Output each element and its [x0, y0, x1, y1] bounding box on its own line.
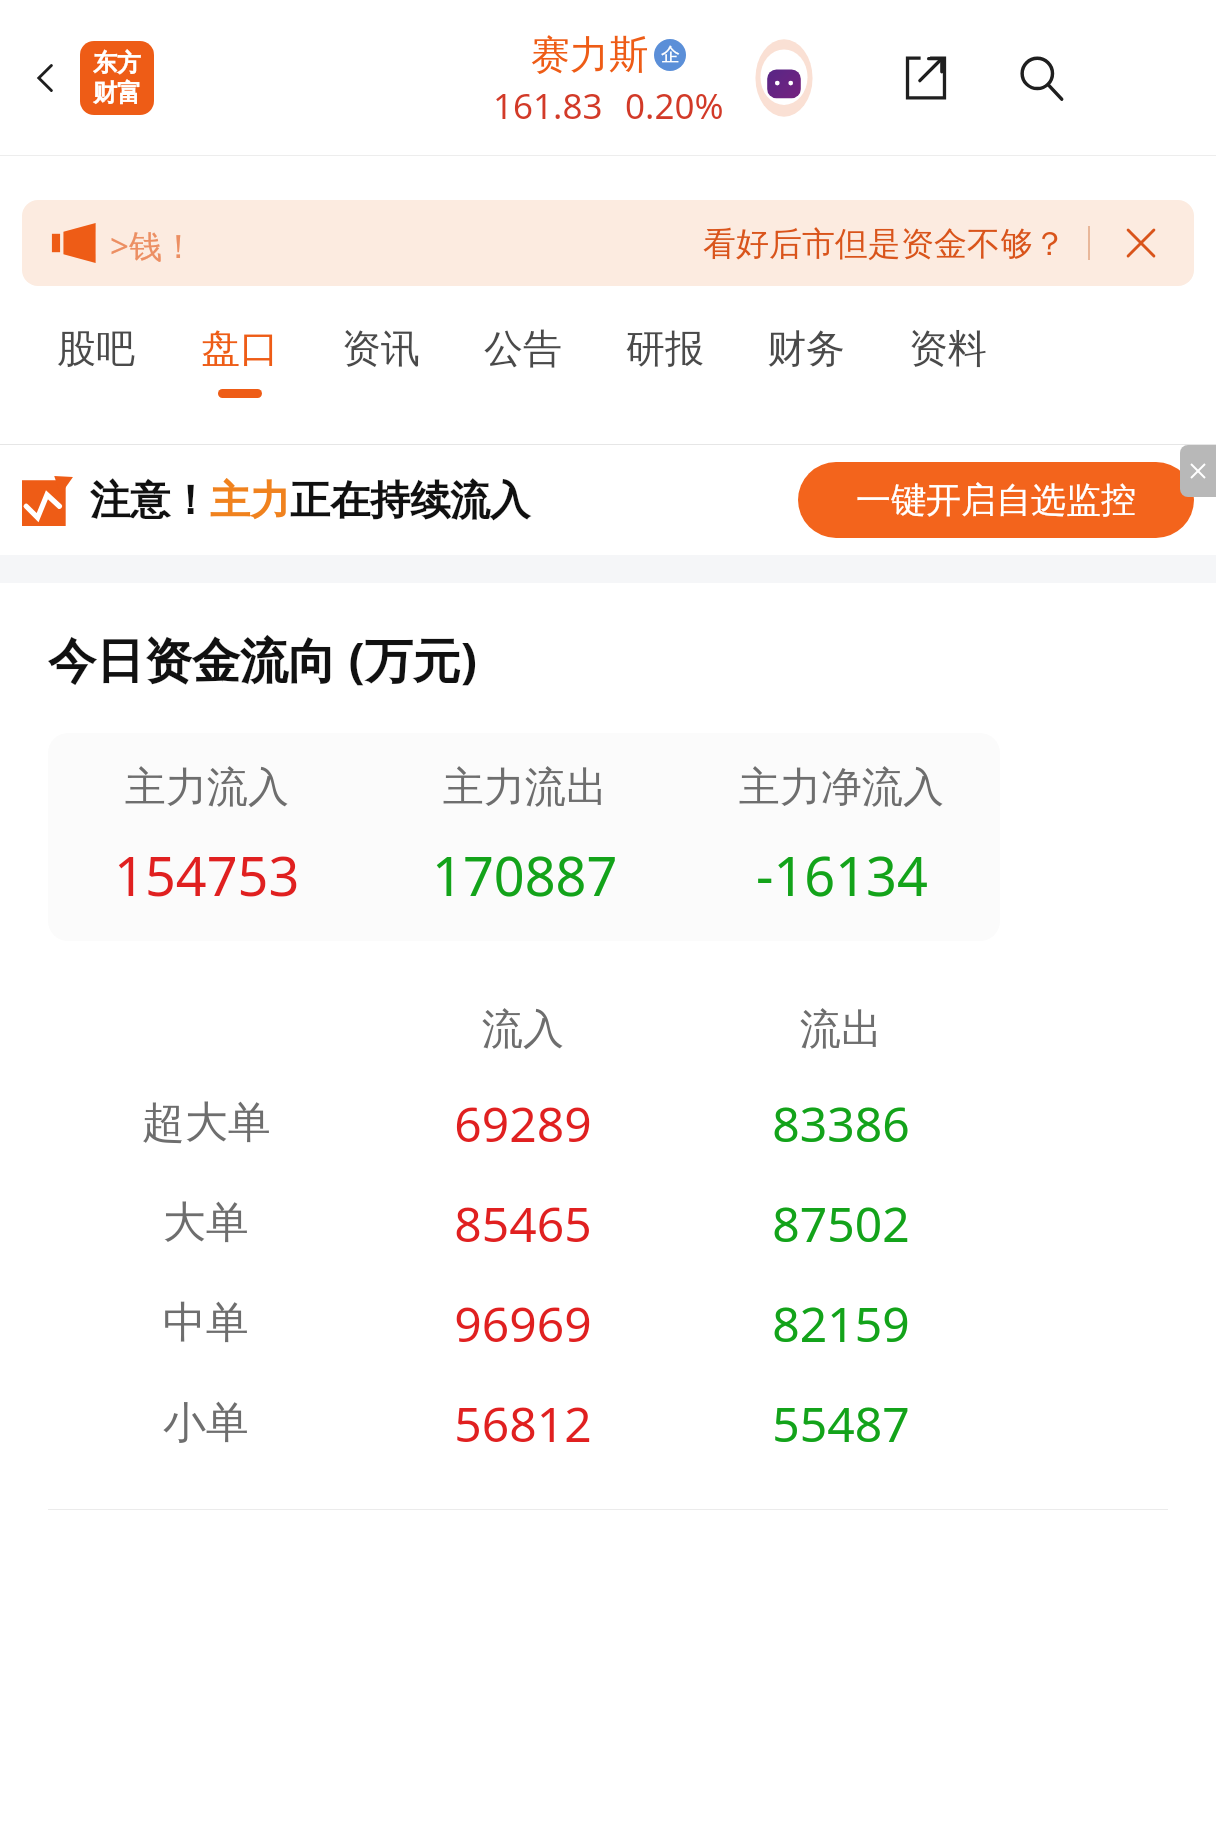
button[interactable]: Close banner: [1108, 210, 1174, 276]
button[interactable]: Search: [1001, 38, 1081, 118]
button[interactable]: Share: [886, 38, 966, 118]
staticText: 161.83: [493, 82, 603, 130]
staticText: 一键开启自选监控: [856, 478, 1136, 522]
staticText: 主力流入: [125, 762, 289, 814]
button[interactable]: Close ad: [1180, 445, 1216, 497]
staticText: 股吧: [57, 324, 135, 373]
button[interactable]: >钱！: [22, 200, 1194, 286]
staticText: 公告: [484, 324, 562, 373]
button[interactable]: 研报: [595, 310, 735, 430]
staticText: -16134: [756, 838, 928, 912]
staticText: 流入: [482, 1004, 564, 1056]
button[interactable]: AI assistant: [742, 36, 826, 120]
staticText: 今日资金流向 (万元): [48, 627, 478, 693]
staticText: 主力: [210, 475, 290, 525]
staticText: 财务: [767, 324, 845, 373]
staticText: 56812: [454, 1391, 592, 1456]
staticText: 研报: [626, 324, 704, 373]
staticText: 看好后市但是资金不够？: [703, 223, 1066, 265]
staticText: 东方: [93, 48, 141, 78]
staticText: 主力流出: [443, 762, 607, 814]
staticText: 85465: [454, 1191, 592, 1256]
button[interactable]: 超大单: [0, 1073, 1216, 1173]
button[interactable]: 公告: [453, 310, 593, 430]
staticText: 流出: [800, 1004, 882, 1056]
button[interactable]: 资料: [878, 310, 1018, 430]
staticText: 小单: [163, 1396, 249, 1450]
staticText: 55487: [772, 1391, 910, 1456]
button[interactable]: East Money: [80, 41, 154, 115]
button[interactable]: 小单: [0, 1373, 1216, 1473]
staticText: 83386: [772, 1091, 910, 1156]
staticText: 96969: [454, 1291, 592, 1356]
button[interactable]: Back: [18, 50, 74, 106]
staticText: 170887: [432, 838, 618, 912]
button[interactable]: 中单: [0, 1273, 1216, 1373]
button[interactable]: 资讯: [311, 310, 451, 430]
staticText: 注意！: [90, 475, 210, 525]
staticText: 中单: [163, 1296, 249, 1350]
staticText: 盘口: [201, 324, 279, 373]
staticText: 82159: [772, 1291, 910, 1356]
staticText: >钱！: [110, 223, 195, 268]
staticText: 正在持续流入: [290, 475, 530, 525]
staticText: 主力净流入: [739, 762, 944, 814]
button[interactable]: 股吧: [26, 310, 166, 430]
staticText: 87502: [772, 1191, 910, 1256]
staticText: 财富: [93, 78, 141, 108]
button[interactable]: 注意！: [22, 474, 530, 526]
staticText: 赛力斯: [531, 30, 648, 79]
button[interactable]: 主力流入: [48, 733, 1000, 941]
button[interactable]: 一键开启自选监控: [798, 462, 1194, 538]
staticText: 资料: [909, 324, 987, 373]
button[interactable]: 盘口: [170, 310, 310, 430]
staticText: 超大单: [142, 1096, 271, 1150]
button[interactable]: 财务: [736, 310, 876, 430]
button[interactable]: 大单: [0, 1173, 1216, 1273]
staticText: 企: [661, 43, 680, 67]
staticText: 0.20%: [625, 82, 724, 130]
button[interactable]: 赛力斯: [493, 30, 724, 130]
staticText: 154753: [114, 838, 300, 912]
staticText: 资讯: [342, 324, 420, 373]
staticText: 69289: [454, 1091, 592, 1156]
staticText: 大单: [163, 1196, 249, 1250]
